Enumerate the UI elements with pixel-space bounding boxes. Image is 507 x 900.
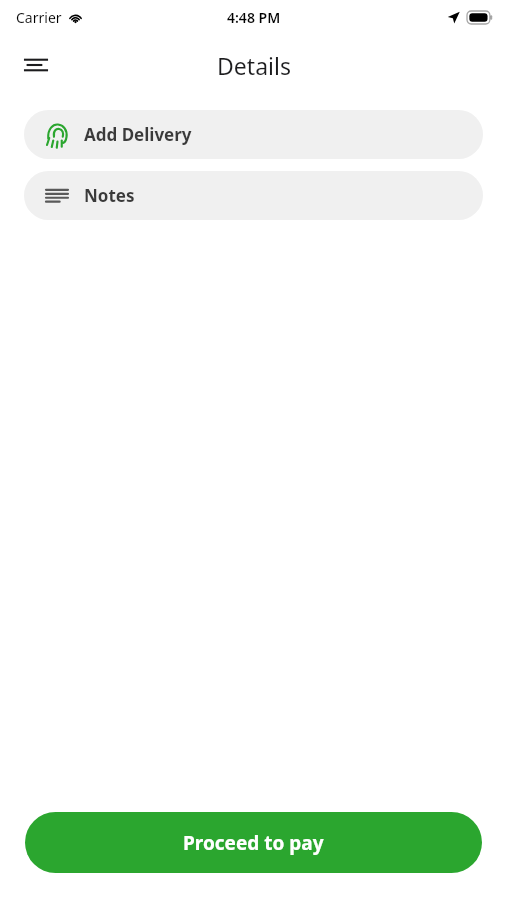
button[interactable]: Notes [24,171,483,220]
button[interactable]: Add Delivery [24,110,483,159]
staticText: 4:48 PM [227,8,281,27]
button[interactable]: Menu [14,43,58,87]
staticText: Carrier [16,8,62,27]
staticText: Notes [84,184,135,207]
staticText: Proceed to pay [183,830,324,856]
button[interactable]: Proceed to pay [25,812,482,873]
staticText: Add Delivery [84,123,192,146]
staticText: Details [217,50,291,81]
